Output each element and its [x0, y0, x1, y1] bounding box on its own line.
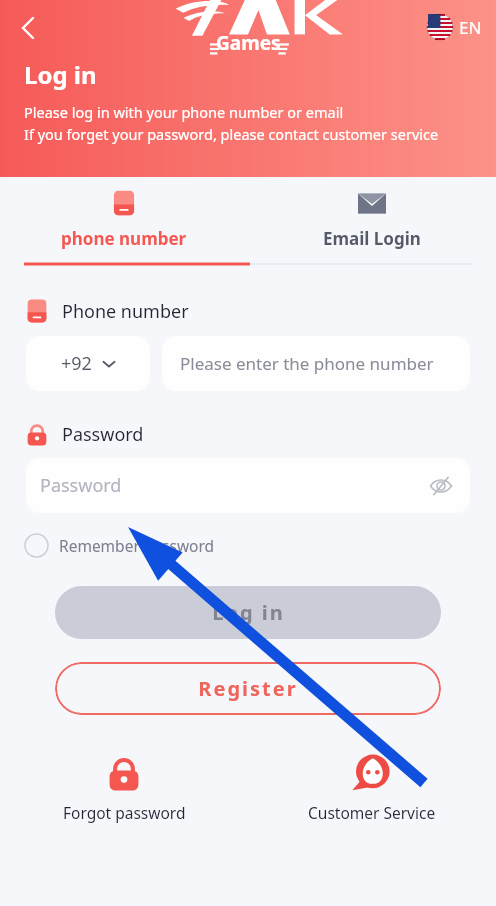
button[interactable]: Register — [55, 662, 441, 715]
staticText: Phone number — [62, 299, 189, 324]
button[interactable]: Forgot password — [0, 749, 248, 827]
button[interactable]: Remember password — [24, 531, 223, 560]
button[interactable]: Log in — [55, 586, 441, 639]
staticText: Register — [198, 675, 298, 702]
staticText: Remember password — [59, 535, 215, 556]
button[interactable]: Please enter the phone number — [162, 336, 470, 391]
staticText: EN — [459, 16, 482, 39]
staticText: If you forget your password, please cont… — [24, 124, 439, 144]
staticText: Email Login — [323, 227, 421, 250]
staticText: Please log in with your phone number or … — [24, 102, 344, 122]
staticText: Games — [216, 30, 281, 56]
button[interactable]: Back — [8, 8, 48, 48]
button[interactable]: phone number — [0, 177, 248, 250]
staticText: Log in — [212, 599, 285, 626]
button[interactable]: Show password — [426, 471, 456, 501]
button[interactable]: Password — [26, 458, 470, 513]
button[interactable]: Email Login — [248, 177, 496, 250]
staticText: Log in — [24, 58, 97, 91]
button[interactable]: Country code +92 — [26, 336, 150, 391]
staticText: +92 — [61, 351, 92, 376]
staticText: Password — [62, 422, 144, 447]
staticText: Password — [40, 473, 122, 498]
staticText: phone number — [61, 227, 187, 250]
staticText: Customer Service — [308, 802, 436, 823]
staticText: Please enter the phone number — [180, 352, 434, 375]
button[interactable]: Customer Service — [248, 749, 496, 827]
button[interactable]: EN — [423, 10, 486, 44]
staticText: Forgot password — [63, 802, 186, 823]
